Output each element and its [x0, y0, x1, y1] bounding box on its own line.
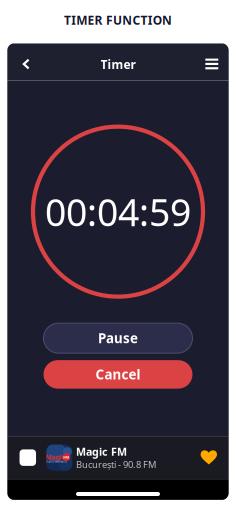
button[interactable]: Menu: [195, 45, 229, 82]
staticText: 00:04:59: [45, 187, 191, 236]
staticText: Magic FM: [76, 445, 127, 459]
button[interactable]: Back: [9, 45, 43, 82]
staticText: Cancel: [95, 365, 140, 383]
staticText: Magic: [46, 453, 65, 462]
button[interactable]: Stop: [14, 436, 42, 479]
button[interactable]: Pause: [43, 323, 192, 353]
staticText: Timer: [100, 56, 135, 72]
button[interactable]: Cancel: [43, 360, 192, 389]
staticText: TIMER FUNCTION: [64, 12, 172, 28]
button[interactable]: Favorite: [195, 435, 223, 478]
staticText: Radio Romania: [46, 460, 66, 463]
staticText: Pause: [98, 329, 138, 347]
staticText: București - 90.8 FM: [76, 458, 156, 471]
staticText: FM: [63, 454, 69, 460]
